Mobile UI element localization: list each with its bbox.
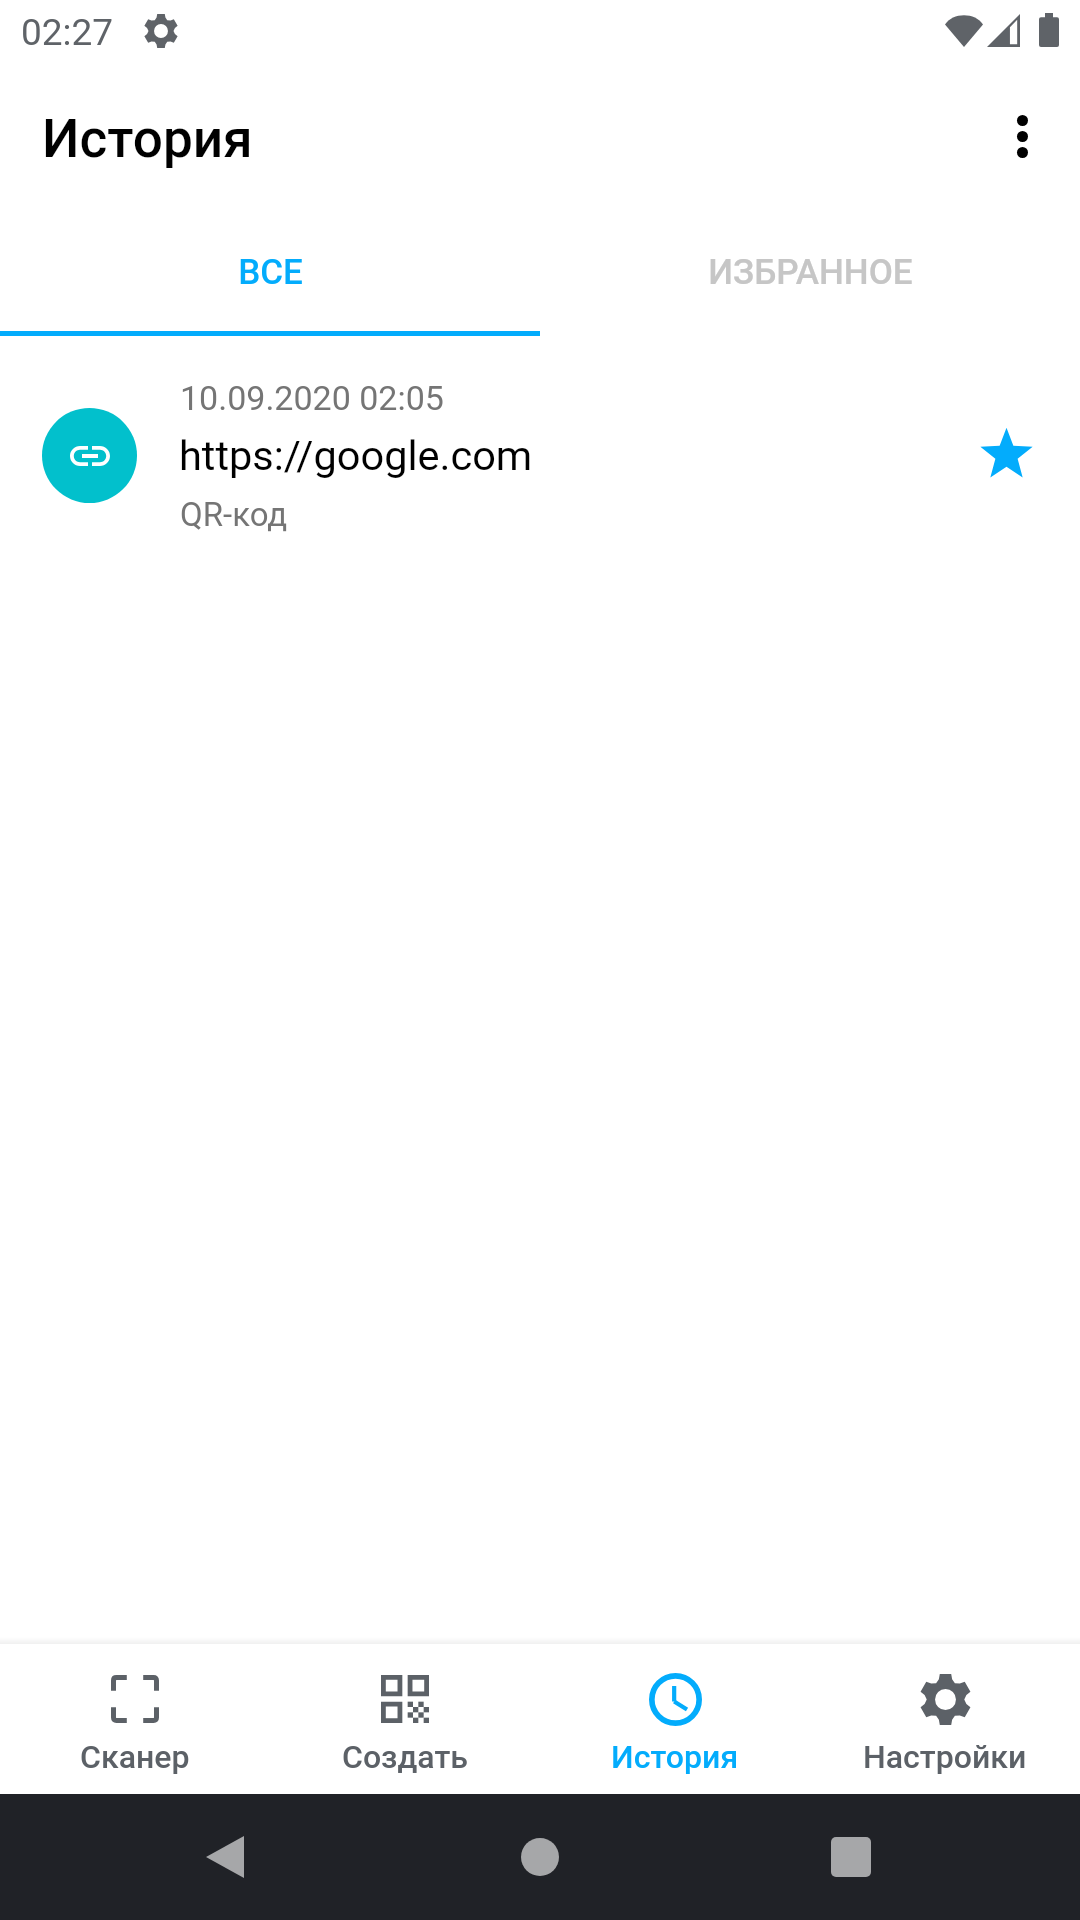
button[interactable]: Back	[172, 1804, 278, 1910]
button[interactable]: Сканер	[0, 1644, 270, 1794]
staticText: История	[611, 1738, 739, 1776]
button[interactable]: Recent apps	[798, 1804, 904, 1910]
button[interactable]: ВСЕ	[0, 193, 540, 336]
staticText: ИЗБРАННОЕ	[708, 252, 913, 293]
button[interactable]: Настройки	[810, 1644, 1080, 1794]
staticText: 10.09.2020 02:05	[180, 378, 444, 418]
staticText: Сканер	[80, 1738, 190, 1776]
button[interactable]: Home	[487, 1804, 593, 1910]
staticText: 02:27	[21, 11, 114, 54]
button[interactable]: История	[540, 1644, 810, 1794]
staticText: https://google.com	[179, 431, 533, 480]
button[interactable]: Favorite	[962, 409, 1051, 498]
staticText: Настройки	[863, 1738, 1027, 1776]
staticText: Создать	[342, 1738, 468, 1776]
staticText: ВСЕ	[238, 252, 303, 293]
button[interactable]: More options	[980, 94, 1064, 178]
button[interactable]: ИЗБРАННОЕ	[540, 193, 1080, 336]
staticText: История	[42, 108, 253, 170]
button[interactable]: 10.09.2020 02:05	[0, 336, 1080, 574]
button[interactable]: Создать	[270, 1644, 540, 1794]
staticText: QR-код	[180, 495, 288, 534]
